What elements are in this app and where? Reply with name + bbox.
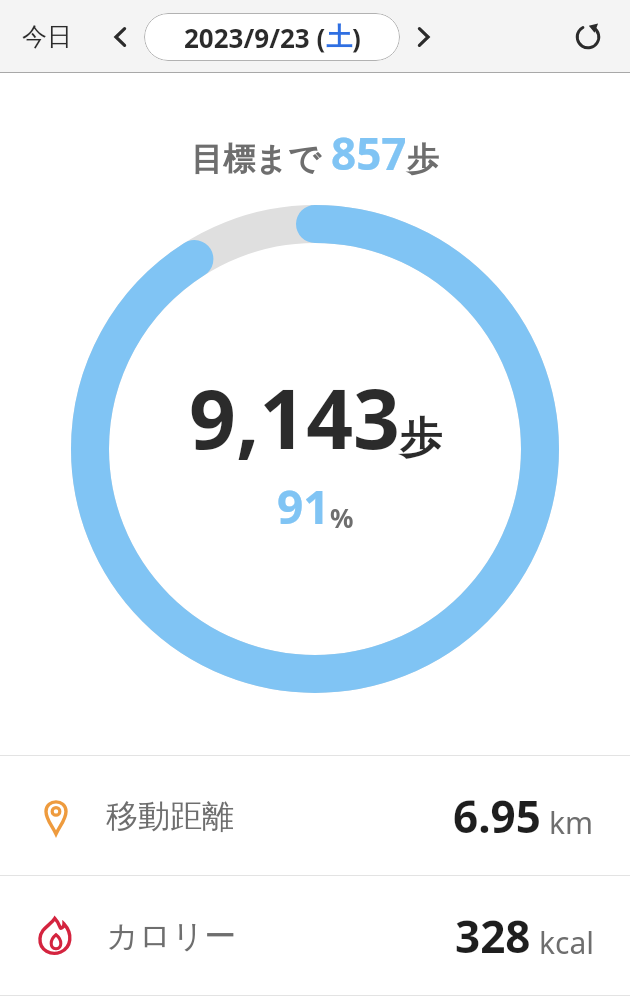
button[interactable]: 2023/9/23 ( — [144, 13, 400, 61]
staticText: 6.95 — [453, 786, 541, 846]
staticText: 9,143 — [189, 361, 400, 473]
staticText: 91 — [277, 475, 330, 538]
staticText: ) — [352, 20, 361, 55]
staticText: kcal — [539, 922, 594, 963]
staticText: km — [549, 802, 594, 843]
button[interactable]: Previous day — [98, 14, 144, 60]
staticText: % — [330, 500, 354, 535]
staticText: 857 — [331, 123, 407, 183]
button[interactable]: 今日 — [16, 13, 78, 60]
staticText: 土 — [326, 21, 352, 54]
staticText: 歩 — [400, 412, 442, 465]
button[interactable]: カロリー — [0, 876, 630, 995]
button[interactable]: Next day — [400, 14, 446, 60]
staticText: カロリー — [106, 916, 237, 956]
staticText: 目標まで — [191, 139, 321, 179]
staticText: 歩 — [407, 139, 439, 179]
button[interactable]: Refresh — [564, 13, 612, 61]
staticText: 今日 — [22, 21, 72, 52]
button[interactable]: 移動距離 — [0, 756, 630, 875]
staticText: 2023/9/23 ( — [184, 20, 326, 55]
staticText: 328 — [455, 906, 531, 966]
staticText: 移動距離 — [106, 796, 234, 836]
